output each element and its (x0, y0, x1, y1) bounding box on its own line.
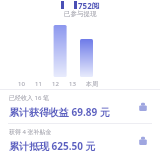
staticText: 已参与提现 (64, 10, 97, 18)
staticText: 752阅 (78, 0, 100, 9)
staticText: 本周 (86, 80, 98, 88)
staticText: 已经收入 16 笔 (9, 94, 49, 102)
staticText: 累计获得收益 69.89 元 (9, 105, 110, 119)
other: 收益明细 (135, 99, 151, 115)
button[interactable]: 已经收入 16 笔 (0, 90, 160, 123)
button[interactable]: 获得 4 张补贴金 (0, 124, 160, 157)
staticText: 12 (52, 80, 59, 88)
staticText: 获得 4 张补贴金 (9, 128, 52, 136)
staticText: 累计抵现 625.50 元 (9, 139, 96, 153)
staticText: 13 (69, 80, 76, 88)
staticText: 11 (35, 80, 42, 88)
other: 抵现明细 (135, 133, 151, 149)
staticText: 10 (18, 80, 25, 88)
